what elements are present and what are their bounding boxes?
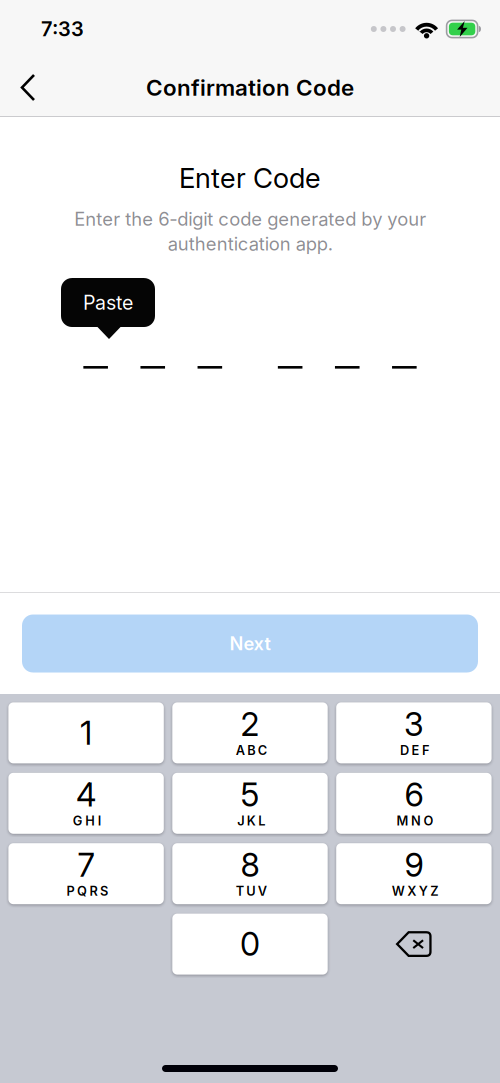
staticText: 5 [240,775,259,814]
staticText: PQRS [66,883,108,899]
staticText: 3 [404,705,424,744]
staticText: Next [229,632,270,654]
staticText: ABC [236,743,267,758]
staticText: WXYZ [392,883,438,899]
button[interactable]: 9 [336,843,492,904]
staticText: 1 [80,713,92,752]
button[interactable]: 0 [172,914,328,975]
button[interactable]: 8 [172,843,328,904]
staticText: 6 [404,775,423,814]
button[interactable]: 3 [336,702,492,763]
button[interactable]: 2 [172,702,328,763]
staticText: Paste [83,291,133,314]
staticText: MNO [397,813,434,829]
staticText: 7:33 [41,17,84,41]
button[interactable]: 4 [8,773,164,834]
staticText: Enter Code [179,161,321,195]
staticText: 4 [76,775,96,814]
button[interactable]: 1 [8,702,164,763]
button[interactable]: Back [2,60,54,114]
button[interactable]: 5 [172,773,328,834]
staticText: 7 [78,846,95,885]
staticText: 8 [240,846,259,885]
button[interactable]: 6 [336,773,492,834]
button[interactable]: Next [22,614,478,672]
staticText: DEF [400,743,430,758]
staticText: 0 [240,925,260,964]
staticText: TUV [236,883,267,899]
staticText: Confirmation Code [146,74,354,101]
button[interactable]: 7 [8,843,164,904]
staticText: Enter the 6-digit code generated by your… [74,208,426,255]
staticText: JKL [237,813,265,829]
staticText: 9 [404,846,423,885]
staticText: GHI [73,813,102,829]
staticText: 2 [240,705,259,744]
button[interactable]: Paste [61,278,155,339]
button[interactable]: Delete [336,914,492,975]
